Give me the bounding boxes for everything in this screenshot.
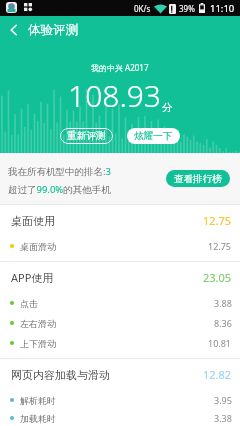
staticText: 体验评测 [28, 22, 78, 38]
button[interactable]: 桌面使用 [0, 205, 240, 236]
staticText: 我的中兴 A2017 [91, 62, 149, 73]
staticText: 点击 [20, 298, 214, 309]
staticText: 8.36 [214, 317, 232, 329]
button[interactable]: Back [0, 16, 28, 44]
staticText: 3.38 [214, 412, 232, 424]
staticText: 3.88 [214, 297, 232, 309]
staticText: 我在所有机型中的排名:3 [8, 165, 111, 178]
button[interactable]: 网页内容加载与滑动 [0, 359, 240, 390]
staticText: 11:10 [210, 2, 235, 15]
staticText: 10.81 [208, 337, 232, 349]
staticText: 23.05 [203, 270, 232, 285]
staticText: 加载耗时 [20, 413, 214, 424]
staticText: APP使用 [11, 270, 203, 285]
staticText: 重新评测 [67, 130, 106, 142]
staticText: 解析耗时 [20, 395, 214, 406]
staticText: 左右滑动 [20, 318, 214, 329]
staticText: 网页内容加载与滑动 [11, 368, 203, 382]
staticText: 超过了99.0%的其他手机 [8, 183, 111, 196]
staticText: 3.95 [214, 394, 232, 406]
button[interactable]: 炫耀一下 [127, 128, 180, 144]
button[interactable]: 查看排行榜 [166, 170, 230, 187]
staticText: 12.82 [203, 367, 232, 382]
staticText: 39% [179, 3, 195, 14]
staticText: 12.75 [203, 213, 232, 228]
staticText: 查看排行榜 [174, 173, 222, 185]
staticText: 12.75 [208, 240, 232, 252]
staticText: 桌面滑动 [20, 241, 208, 252]
staticText: 108.93 [68, 75, 161, 116]
button[interactable]: 重新评测 [60, 128, 113, 144]
staticText: 炫耀一下 [134, 130, 173, 142]
staticText: 桌面使用 [11, 214, 203, 228]
staticText: 上下滑动 [20, 338, 208, 349]
button[interactable]: APP使用 [0, 262, 240, 293]
staticText: 分 [162, 101, 173, 114]
staticText: 0K/s [134, 3, 151, 14]
